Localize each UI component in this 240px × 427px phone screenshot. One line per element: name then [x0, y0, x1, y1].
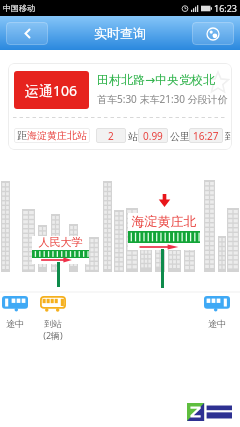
staticText: 海淀黄庄北站	[27, 129, 87, 142]
staticText: 海淀黄庄北	[128, 213, 200, 229]
staticText: 田村北路→中央党校北	[97, 72, 216, 87]
button[interactable]: 运通106	[8, 63, 232, 150]
staticText: 途中	[2, 318, 28, 329]
button[interactable]: Bus arriving	[40, 296, 66, 312]
staticText: 运通106	[25, 81, 78, 100]
staticText: 人民大学	[32, 235, 89, 249]
staticText: 首车5:30 末车21:30 分段计价	[97, 92, 228, 106]
staticText: 距	[17, 129, 27, 142]
staticText: 2	[108, 129, 114, 143]
staticText: 到	[225, 130, 232, 143]
staticText: 途中	[204, 318, 230, 329]
staticText: 中国移动	[3, 3, 35, 13]
button[interactable]: Refresh	[192, 22, 234, 45]
button[interactable]: 海淀黄庄北	[128, 213, 200, 250]
staticText: 公里	[170, 130, 190, 143]
staticText: 实时查询	[94, 25, 146, 41]
button[interactable]: Back	[6, 22, 48, 45]
button[interactable]: Bus en route	[2, 296, 28, 312]
staticText: 16:23	[214, 2, 238, 14]
staticText: 0.99	[143, 129, 163, 143]
staticText: 到站	[40, 318, 66, 329]
button[interactable]: 人民大学	[32, 236, 89, 264]
staticText: (2辆)	[40, 329, 66, 341]
staticText: 16:27	[193, 129, 219, 143]
button[interactable]: Bus en route right	[204, 296, 230, 312]
staticText: 站	[128, 130, 138, 143]
